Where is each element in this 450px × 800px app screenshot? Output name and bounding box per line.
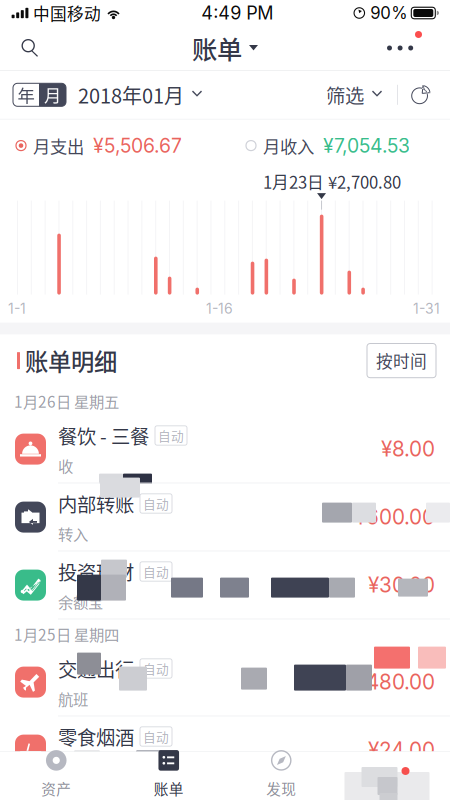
staticText: 1-16 — [206, 300, 233, 317]
staticText: 4:49 PM — [201, 2, 273, 24]
button[interactable]: 账单 — [192, 26, 258, 70]
staticText: 余额宝 — [58, 590, 103, 613]
staticText: 筛选 — [326, 81, 364, 109]
staticText: 账单 — [192, 30, 242, 66]
button[interactable]: 月收入 — [246, 126, 450, 166]
staticText: 自动 — [143, 727, 169, 746]
staticText: 90% — [370, 3, 407, 23]
staticText: 零食烟酒 — [58, 722, 134, 750]
button[interactable]: 2018年01月 — [66, 73, 202, 117]
button[interactable]: 餐饮 - 三餐 — [0, 416, 450, 484]
button[interactable]: 更多 — [386, 26, 436, 70]
button[interactable]: 筛选 — [326, 73, 382, 117]
staticText: 账单 — [154, 778, 184, 799]
staticText: ¥30.00 — [368, 573, 435, 598]
staticText: 1月25日 星期四 — [14, 623, 119, 645]
staticText: ¥7,054.53 — [323, 134, 410, 157]
staticText: 1-31 — [413, 300, 440, 317]
staticText: ¥480.00 — [355, 670, 435, 695]
staticText: 1-1 — [8, 300, 26, 317]
staticText: ¥5,506.67 — [93, 134, 182, 157]
staticText: 自动 — [143, 562, 169, 581]
button[interactable]: 图表 — [413, 73, 437, 117]
button[interactable]: 我的 — [337, 752, 450, 800]
staticText: 按时间 — [376, 348, 427, 373]
button[interactable]: 发现 — [225, 752, 337, 800]
staticText: 月 — [44, 82, 61, 107]
button[interactable]: 年 — [13, 83, 39, 106]
staticText: 投资理财 — [58, 557, 134, 585]
staticText: ¥8.00 — [381, 437, 435, 462]
button[interactable]: 内部转账 — [0, 484, 450, 552]
button[interactable]: 月支出 — [16, 126, 246, 166]
staticText: 自动 — [143, 494, 169, 513]
button[interactable]: 资产 — [0, 752, 112, 800]
button[interactable]: 投资理财 — [0, 552, 450, 620]
button[interactable]: 零食烟酒 — [0, 717, 450, 785]
staticText: 月收入 — [263, 133, 314, 158]
staticText: 内部转账 — [58, 489, 134, 517]
staticText: 航班 — [58, 687, 88, 710]
staticText: 中国移动 — [33, 1, 101, 25]
staticText: 交通出行 — [58, 654, 134, 682]
staticText: 月支出 — [33, 133, 84, 158]
staticText: 1月26日 星期五 — [14, 390, 119, 412]
button[interactable]: 按时间 — [367, 343, 436, 378]
staticText: 餐饮 - 三餐 — [58, 421, 149, 449]
staticText: ¥600.00 — [355, 505, 435, 530]
staticText: 发现 — [266, 778, 296, 799]
staticText: 收 — [58, 454, 73, 477]
staticText: 年 — [17, 82, 34, 107]
button[interactable]: 账单 — [112, 752, 225, 800]
staticText: 自动 — [143, 659, 169, 678]
staticText: 2018年01月 — [78, 80, 184, 109]
staticText: 账单明细 — [25, 344, 117, 377]
staticText: 资产 — [41, 778, 71, 799]
staticText: 转入 — [58, 522, 88, 545]
staticText: ¥24.00 — [368, 738, 435, 763]
staticText: 自动 — [158, 426, 184, 445]
button[interactable]: 搜索 — [14, 26, 64, 70]
staticText: 1月23日 ¥2,700.80 — [263, 169, 401, 194]
button[interactable]: 月 — [39, 83, 66, 106]
button[interactable]: 交通出行 — [0, 649, 450, 717]
